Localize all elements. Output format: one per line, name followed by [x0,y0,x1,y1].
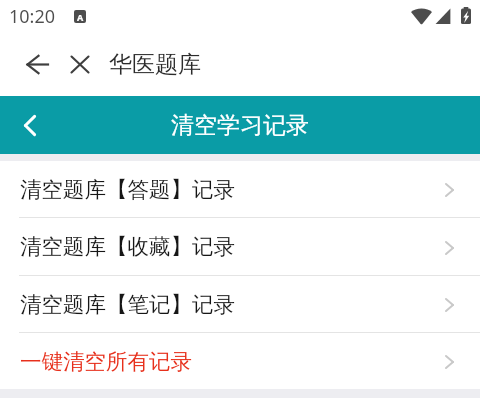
staticText: 清空题库【答题】记录 [20,176,235,203]
staticText: 10:20 [9,4,56,29]
button[interactable]: 清空题库【答题】记录 [0,161,480,217]
button[interactable]: Close [59,44,100,85]
staticText: 华医题库 [109,50,201,79]
staticText: 清空题库【收藏】记录 [20,233,235,260]
staticText: 清空学习记录 [171,111,309,140]
button[interactable]: Back [9,105,50,146]
staticText: 一键清空所有记录 [20,348,192,375]
button[interactable]: 清空题库【收藏】记录 [0,218,480,275]
button[interactable]: Back [17,44,58,85]
button[interactable]: 一键清空所有记录 [0,333,480,389]
staticText: A [77,11,84,23]
staticText: 清空题库【笔记】记录 [20,291,235,318]
button[interactable]: 清空题库【笔记】记录 [0,276,480,332]
